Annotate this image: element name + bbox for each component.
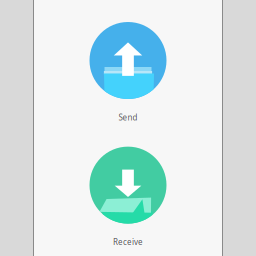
button[interactable]: Send <box>89 22 166 123</box>
staticText: Receive <box>113 237 143 247</box>
button[interactable]: Receive <box>89 147 166 247</box>
staticText: Send <box>118 112 137 123</box>
